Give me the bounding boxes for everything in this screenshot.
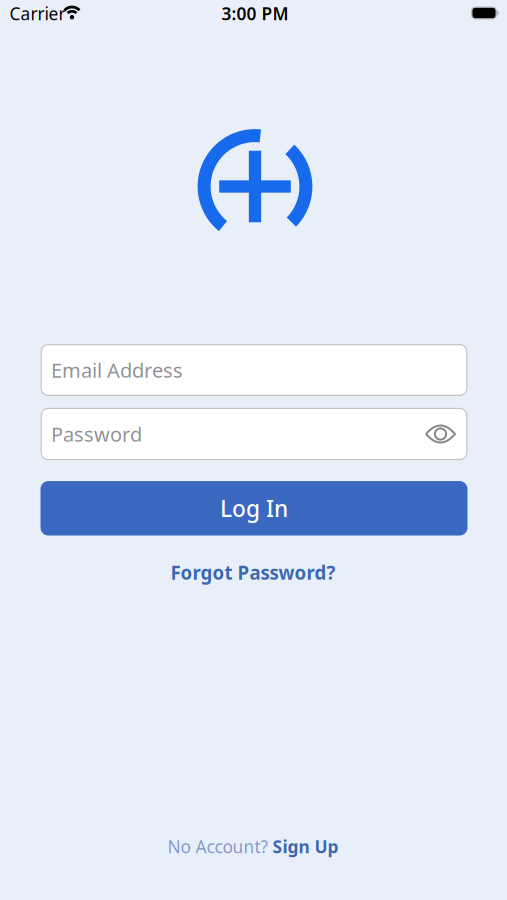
- staticText: No Account?: [167, 835, 268, 858]
- staticText: Password: [51, 421, 142, 447]
- button[interactable]: Log In: [40, 481, 467, 536]
- button[interactable]: Forgot Password?: [170, 560, 335, 585]
- button[interactable]: No Account?: [167, 835, 338, 858]
- staticText: Forgot Password?: [170, 560, 335, 585]
- staticText: 3:00 PM: [221, 2, 288, 25]
- staticText: Carrier: [9, 2, 65, 25]
- staticText: Log In: [220, 493, 288, 523]
- staticText: Sign Up: [272, 835, 338, 858]
- button[interactable]: Show password: [423, 419, 457, 449]
- staticText: Email Address: [51, 357, 183, 383]
